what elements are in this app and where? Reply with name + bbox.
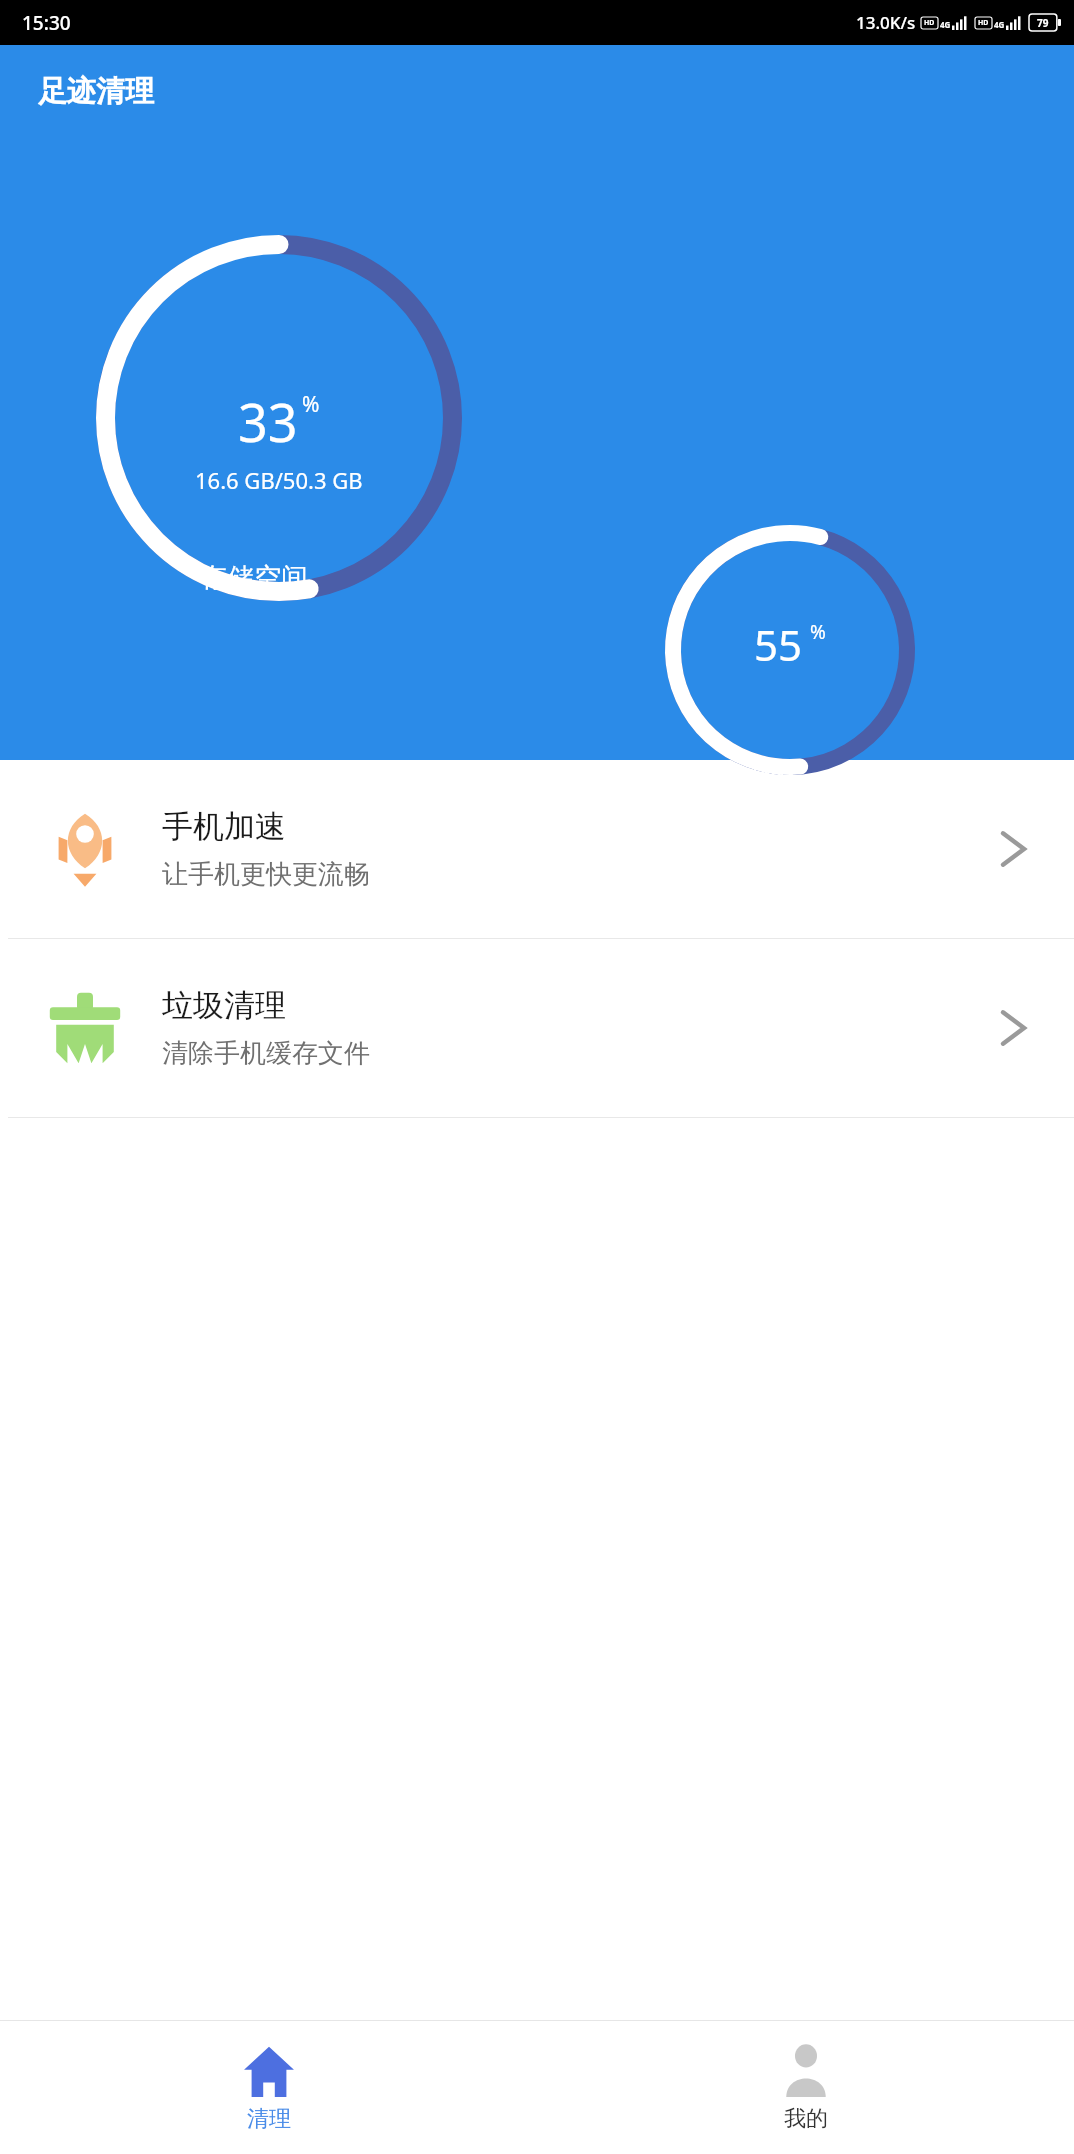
- staticText: 79: [1037, 16, 1049, 30]
- staticText: 清除手机缓存文件: [162, 1037, 370, 1070]
- staticText: 垃圾清理: [162, 986, 286, 1025]
- staticText: 内存: [752, 758, 800, 788]
- staticText: HD: [978, 18, 989, 28]
- staticText: 16.6 GB/50.3 GB: [195, 465, 363, 495]
- staticText: %: [810, 619, 826, 645]
- staticText: 55: [754, 616, 803, 673]
- staticText: %: [302, 390, 320, 419]
- button[interactable]: 垃圾清理: [0, 939, 1074, 1117]
- staticText: 13.0K/s: [856, 11, 916, 34]
- button[interactable]: 我的: [537, 2021, 1074, 2154]
- staticText: 手机加速: [162, 807, 286, 846]
- button[interactable]: 清理: [0, 2021, 537, 2154]
- staticText: 我的: [784, 2105, 828, 2133]
- staticText: 让手机更快更流畅: [162, 858, 370, 891]
- staticText: 清理: [247, 2105, 291, 2133]
- staticText: 存储空间: [200, 561, 308, 595]
- staticText: 4G: [994, 19, 1005, 30]
- staticText: 33: [238, 386, 298, 457]
- staticText: 4G: [940, 19, 951, 30]
- button[interactable]: 手机加速: [0, 760, 1074, 938]
- staticText: HD: [924, 18, 935, 28]
- staticText: 足迹清理: [38, 73, 154, 110]
- staticText: 15:30: [22, 10, 71, 36]
